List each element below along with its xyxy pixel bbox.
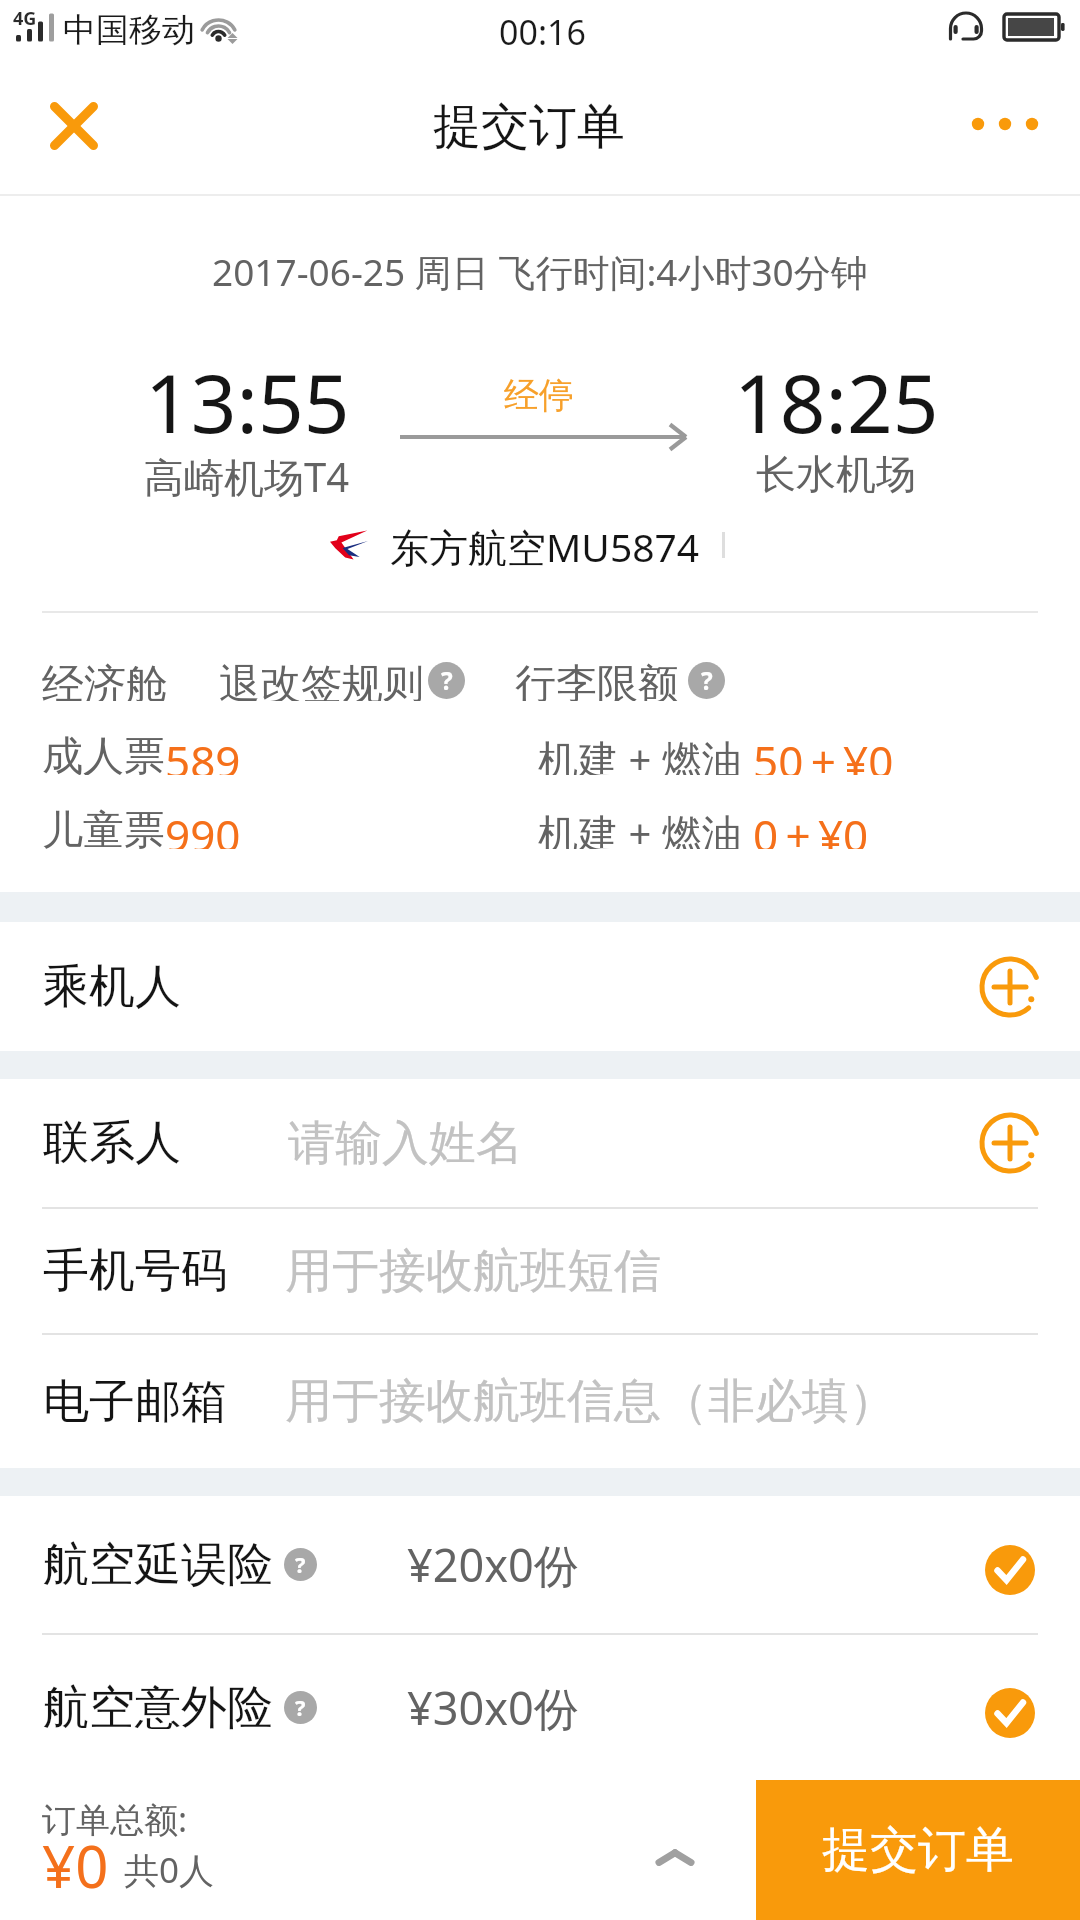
staticText: 用于接收航班信息（非必填） xyxy=(285,1372,896,1431)
button[interactable]: Add xyxy=(969,1102,1051,1184)
staticText: 2017-06-25 周日 飞行时间:4小时30分钟 xyxy=(212,246,868,297)
button[interactable]: 电子邮箱 xyxy=(0,1335,1080,1468)
staticText: 0 + ¥0 xyxy=(753,805,869,849)
staticText: 4G xyxy=(13,6,37,31)
staticText: 乘机人 xyxy=(43,958,181,1016)
staticText: 589 xyxy=(165,731,241,775)
staticText: 手机号码 xyxy=(43,1242,227,1300)
staticText: 订单总额: xyxy=(42,1796,188,1842)
button[interactable]: Help xyxy=(428,662,465,699)
button[interactable]: 航空意外险 xyxy=(0,1635,1080,1780)
staticText: 行李限额 xyxy=(515,659,679,701)
staticText: 机建 + 燃油 xyxy=(538,731,753,775)
staticText: 联系人 xyxy=(43,1114,181,1172)
button[interactable]: Help xyxy=(688,662,725,699)
staticText: ? xyxy=(441,664,453,697)
staticText: 18:25 xyxy=(734,347,939,456)
staticText: 共0人 xyxy=(124,1846,215,1894)
staticText: 电子邮箱 xyxy=(43,1373,227,1431)
button[interactable]: More options xyxy=(940,61,1070,187)
button[interactable]: Help xyxy=(284,1548,317,1581)
staticText: 用于接收航班短信 xyxy=(285,1242,661,1301)
staticText: 990 xyxy=(165,805,241,849)
staticText: ? xyxy=(701,664,713,697)
staticText: 航空延误险 xyxy=(43,1536,273,1594)
button[interactable]: 乘机人 xyxy=(0,922,1080,1051)
staticText: 机建 + 燃油 xyxy=(538,805,753,849)
staticText: 中国移动 xyxy=(63,9,195,51)
button[interactable]: 航空延误险 xyxy=(0,1496,1080,1633)
staticText: 提交订单 xyxy=(822,1820,1014,1880)
staticText: 50 + ¥0 xyxy=(753,731,894,775)
staticText: 提交订单 xyxy=(433,97,625,157)
staticText: 儿童票 xyxy=(42,805,165,849)
button[interactable]: Insurance selected xyxy=(975,1678,1045,1748)
button[interactable]: Close xyxy=(14,63,134,189)
staticText: 00:16 xyxy=(499,9,586,55)
staticText: ¥30x0份 xyxy=(407,1677,579,1738)
staticText: 航空意外险 xyxy=(43,1679,273,1737)
button[interactable]: Insurance selected xyxy=(975,1535,1045,1605)
button[interactable]: Add xyxy=(969,946,1051,1028)
staticText: 高崎机场T4 xyxy=(144,449,350,504)
button[interactable]: 联系人 xyxy=(0,1079,1080,1207)
button[interactable]: Help xyxy=(284,1691,317,1724)
staticText: 长水机场 xyxy=(756,449,916,499)
staticText: 东方航空MU5874 xyxy=(390,520,700,570)
staticText: ¥20x0份 xyxy=(407,1534,579,1595)
staticText: ? xyxy=(295,1550,306,1580)
staticText: 经停 xyxy=(504,373,574,417)
staticText: ¥0 xyxy=(42,1826,109,1905)
staticText: ? xyxy=(295,1693,306,1723)
staticText: 13:55 xyxy=(145,347,350,456)
staticText: 退改签规则 xyxy=(219,659,424,701)
staticText: 经济舱 xyxy=(42,659,168,701)
staticText: 成人票 xyxy=(42,731,165,775)
button[interactable]: Expand price details xyxy=(630,1812,720,1902)
button[interactable]: 提交订单 xyxy=(756,1780,1080,1920)
staticText: 请输入姓名 xyxy=(288,1114,523,1173)
button[interactable]: 手机号码 xyxy=(0,1209,1080,1333)
